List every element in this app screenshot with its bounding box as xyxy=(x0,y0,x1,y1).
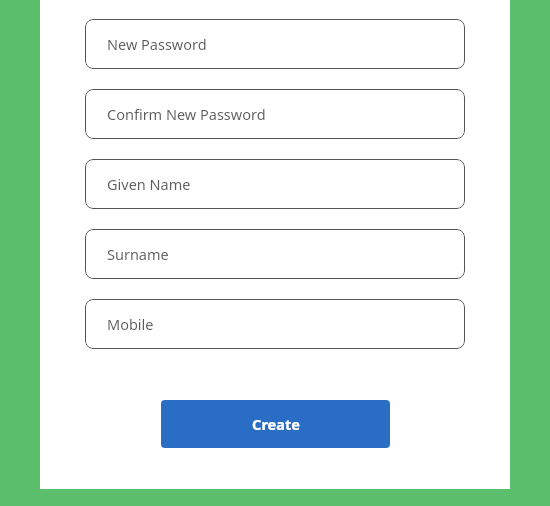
staticText: Surname xyxy=(107,244,169,264)
staticText: New Password xyxy=(107,34,207,54)
button[interactable]: Create xyxy=(161,400,390,448)
button[interactable]: New Password xyxy=(85,19,465,69)
button[interactable]: Given Name xyxy=(85,159,465,209)
button[interactable]: Surname xyxy=(85,229,465,279)
button[interactable]: Mobile xyxy=(85,299,465,349)
staticText: Create xyxy=(252,414,300,434)
staticText: Given Name xyxy=(107,174,191,194)
button[interactable]: Confirm New Password xyxy=(85,89,465,139)
staticText: Confirm New Password xyxy=(107,104,266,124)
staticText: Mobile xyxy=(107,314,154,334)
